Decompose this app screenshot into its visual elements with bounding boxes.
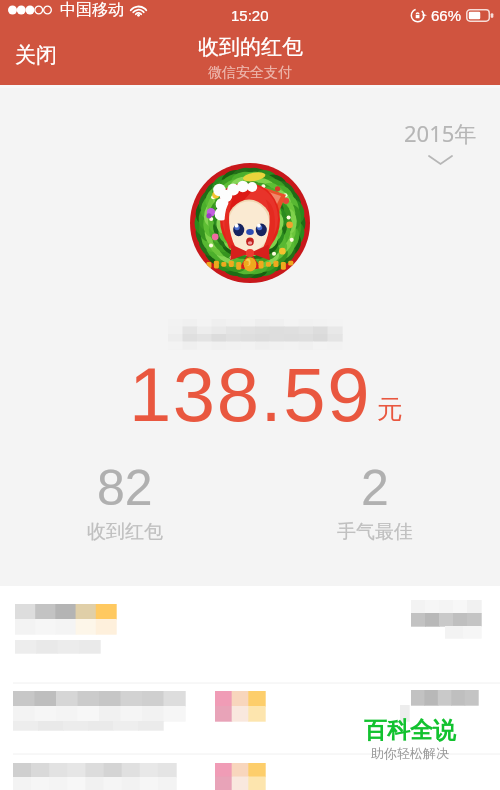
staticText: 百科全说 <box>364 716 456 745</box>
button[interactable]: 82 <box>0 460 250 544</box>
staticText: 收到红包 <box>87 520 163 544</box>
button[interactable]: Avatar <box>190 163 310 283</box>
staticText: 手气最佳 <box>337 520 413 544</box>
button[interactable]: Red packet record 1 <box>0 594 500 682</box>
staticText: 138.59 <box>129 352 372 437</box>
staticText: 助你轻松解决 <box>371 745 449 761</box>
staticText: 关闭 <box>15 42 57 68</box>
staticText: 元 <box>377 393 403 426</box>
other: Rotation lock <box>411 8 426 23</box>
other: Battery 66 percent <box>466 9 494 22</box>
staticText: 中国移动 <box>60 0 124 20</box>
button[interactable]: Red packet record 3 <box>0 755 500 790</box>
staticText: 微信安全支付 <box>208 64 292 82</box>
staticText: 2 <box>361 460 389 516</box>
staticText: 2015年 <box>404 118 477 148</box>
staticText: 15:20 <box>231 7 269 24</box>
staticText: 82 <box>97 460 153 516</box>
button[interactable]: 关闭 <box>2 36 70 74</box>
button[interactable]: 2 <box>250 460 500 544</box>
button[interactable]: 2015年 <box>392 114 489 168</box>
button[interactable]: Red packet record 2 <box>0 684 500 754</box>
staticText: 收到的红包 <box>198 34 303 60</box>
staticText: 66% <box>431 7 462 24</box>
